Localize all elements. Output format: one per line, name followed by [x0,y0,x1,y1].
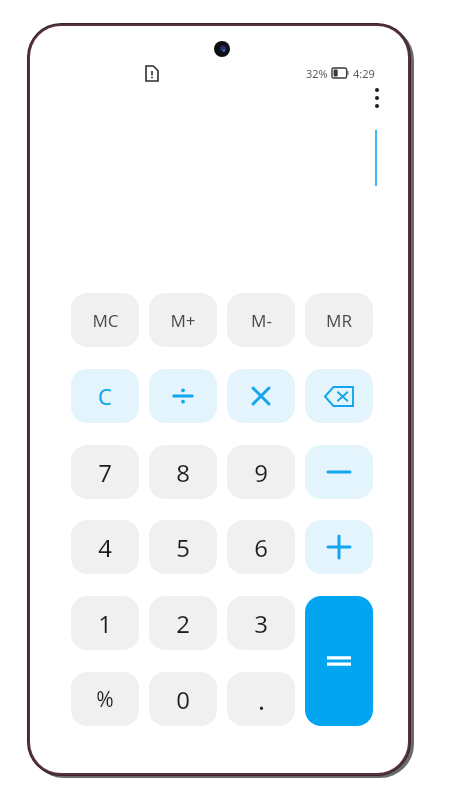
button[interactable]: 6 [227,520,295,574]
button[interactable]: MR [305,293,373,347]
button[interactable]: 3 [227,596,295,650]
staticText: 7 [98,456,112,489]
button[interactable]: 5 [149,520,217,574]
staticText: 0 [176,683,190,716]
button[interactable]: . [227,672,295,726]
staticText: 3 [254,607,268,640]
staticText: 8 [176,456,190,489]
button[interactable]: 7 [71,445,139,499]
staticText: 1 [98,607,112,640]
staticText: 6 [254,531,268,564]
button[interactable]: % [71,672,139,726]
staticText: 4:29 [353,66,375,81]
button[interactable]: MC [71,293,139,347]
button[interactable]: Equals [305,596,373,726]
staticText: 2 [176,607,190,640]
button[interactable]: 1 [71,596,139,650]
button[interactable]: Plus [305,520,373,574]
staticText: % [96,685,114,714]
button[interactable]: More options [357,78,397,118]
staticText: 32% [306,66,328,81]
staticText: C [98,381,112,411]
staticText: . [258,682,265,717]
button[interactable]: C [71,369,139,423]
button[interactable]: M- [227,293,295,347]
button[interactable]: 4 [71,520,139,574]
staticText: M- [251,309,272,332]
staticText: MC [92,309,119,332]
staticText: 9 [254,456,268,489]
button[interactable]: Divide [149,369,217,423]
button[interactable]: Multiply [227,369,295,423]
button[interactable]: Backspace [305,369,373,423]
staticText: 4 [98,531,112,564]
staticText: M+ [170,309,196,332]
button[interactable]: M+ [149,293,217,347]
staticText: 5 [176,531,190,564]
staticText: MR [326,309,352,332]
button[interactable]: 2 [149,596,217,650]
button[interactable]: Minus [305,445,373,499]
button[interactable]: 0 [149,672,217,726]
button[interactable]: 8 [149,445,217,499]
button[interactable]: 9 [227,445,295,499]
